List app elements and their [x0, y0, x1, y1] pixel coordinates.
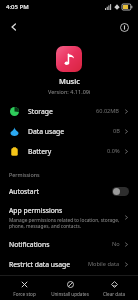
staticText: Version: 4.11.09i	[48, 88, 91, 95]
button[interactable]: Force stop	[11, 278, 38, 299]
button[interactable]: Uninstall updates	[49, 278, 91, 299]
staticText: Battery	[28, 147, 52, 156]
button[interactable]: Clear data	[101, 278, 127, 299]
staticText: Data usage	[28, 127, 65, 136]
button[interactable]: Battery	[0, 141, 138, 161]
staticText: Uninstall updates	[51, 291, 89, 297]
staticText: 4:05 PM	[6, 3, 29, 11]
button[interactable]: Back	[5, 18, 23, 36]
staticText: 0B	[113, 127, 120, 135]
staticText: App permissions	[9, 206, 63, 215]
button[interactable]: Data usage	[0, 121, 138, 141]
staticText: Music	[59, 76, 80, 86]
staticText: Clear data	[103, 291, 125, 297]
staticText: Restrict data usage	[9, 260, 71, 269]
button[interactable]: Autostart	[0, 181, 138, 201]
staticText: No	[112, 240, 120, 248]
button[interactable]: Storage	[0, 101, 138, 121]
staticText: Autostart	[9, 187, 39, 196]
staticText: Mobile data	[88, 260, 120, 268]
staticText: Permissions	[9, 171, 40, 178]
staticText: 0.0%	[107, 147, 120, 155]
staticText: 60.02MB	[96, 107, 120, 115]
staticText: Force stop	[13, 291, 36, 297]
button[interactable]: App permissions	[0, 201, 138, 234]
button[interactable]: Notifications	[0, 234, 138, 254]
button[interactable]: Restrict data usage	[0, 254, 138, 274]
staticText: Storage	[28, 107, 53, 116]
staticText: Notifications	[9, 240, 50, 249]
button[interactable]: Help	[115, 18, 133, 36]
staticText: Manage permissions related to location, …	[9, 217, 120, 229]
